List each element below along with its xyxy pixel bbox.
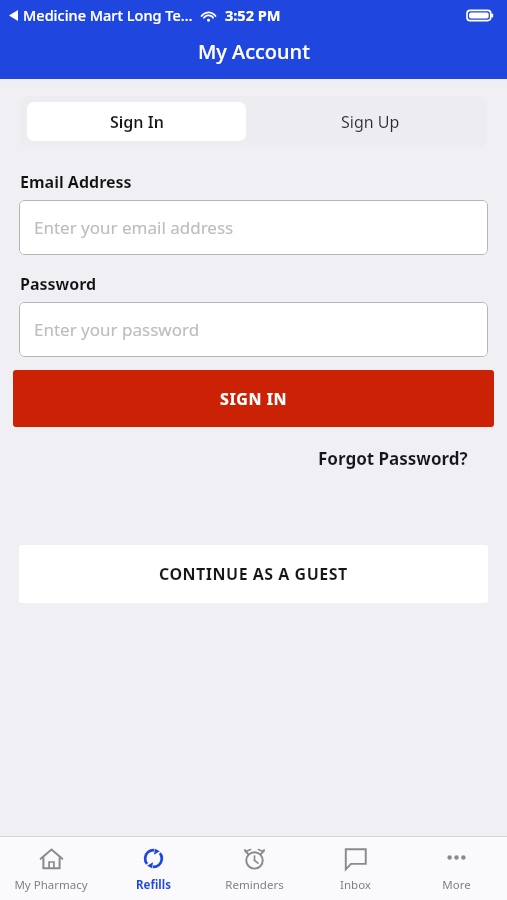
staticText: Medicine Mart Long Te…	[23, 5, 193, 25]
staticText: SIGN IN	[220, 388, 288, 410]
staticText: Inbox	[340, 877, 371, 893]
button[interactable]: More	[406, 840, 507, 898]
staticText: More	[442, 877, 471, 893]
staticText: My Pharmacy	[14, 877, 88, 893]
staticText: Refills	[136, 877, 171, 893]
staticText: Enter your password	[34, 318, 200, 341]
button[interactable]: Refills	[102, 840, 204, 898]
staticText: My Account	[198, 38, 310, 65]
button[interactable]: Sign Up	[253, 96, 487, 147]
button[interactable]: My Pharmacy	[0, 840, 102, 898]
button[interactable]: Sign In	[27, 102, 246, 141]
staticText: Sign Up	[341, 111, 400, 133]
staticText: Forgot Password?	[318, 447, 468, 470]
staticText: Enter your email address	[34, 216, 234, 239]
button[interactable]: Enter your email address	[19, 200, 488, 255]
staticText: CONTINUE AS A GUEST	[159, 563, 348, 585]
staticText: Sign In	[110, 111, 164, 133]
button[interactable]: CONTINUE AS A GUEST	[19, 545, 488, 603]
staticText: 3:52 PM	[225, 5, 281, 25]
button[interactable]: Forgot Password?	[318, 445, 507, 472]
button[interactable]: Inbox	[305, 840, 406, 898]
staticText: Email Address	[20, 171, 132, 193]
button[interactable]: Enter your password	[19, 302, 488, 357]
staticText: Password	[20, 273, 97, 295]
button[interactable]: Reminders	[204, 840, 305, 898]
staticText: Reminders	[225, 877, 284, 893]
button[interactable]: SIGN IN	[13, 370, 494, 427]
